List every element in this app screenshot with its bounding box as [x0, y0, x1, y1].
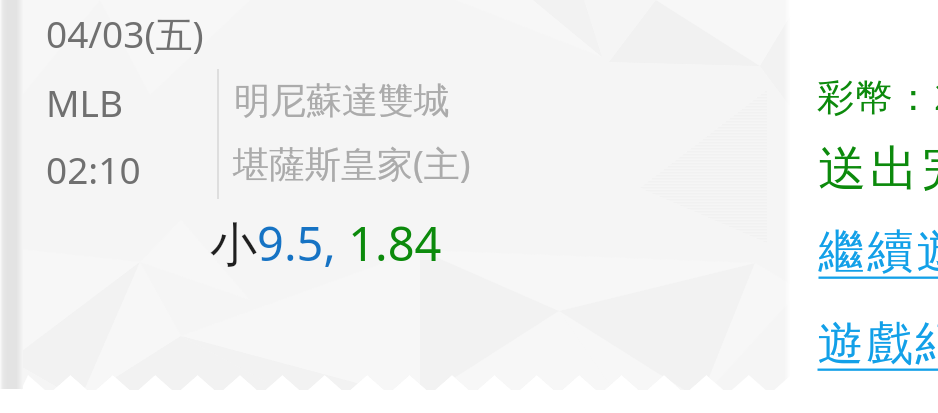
button[interactable]: 小9.5, 1.84: [210, 211, 442, 275]
button[interactable]: 繼續遊: [817, 223, 938, 281]
staticText: 明尼蘇達雙城: [234, 78, 450, 123]
staticText: MLB: [46, 77, 123, 127]
staticText: 堪薩斯皇家(主): [233, 139, 471, 188]
staticText: 04/03(五): [46, 8, 204, 59]
staticText: 小9.5, 1.84: [210, 211, 442, 275]
staticText: 彩幣：2: [817, 70, 938, 121]
staticText: 遊戲紀: [816, 315, 938, 373]
staticText: 繼續遊: [817, 223, 938, 281]
button[interactable]: 遊戲紀: [816, 315, 938, 373]
staticText: 02:10: [46, 144, 141, 194]
staticText: 送出完: [816, 139, 938, 199]
